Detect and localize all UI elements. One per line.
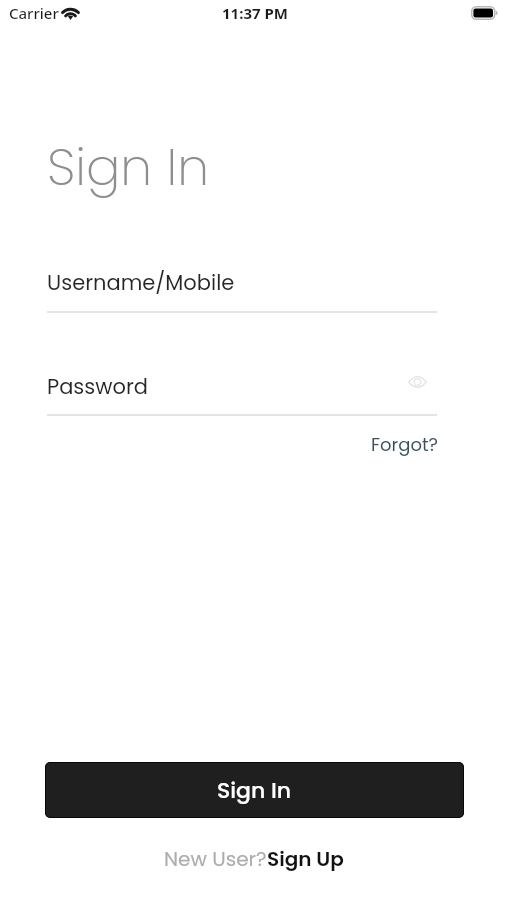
staticText: Sign Up [267,845,344,873]
staticText: Username/Mobile [47,268,235,297]
button[interactable]: Sign In [45,762,464,818]
button[interactable]: Username/Mobile [47,268,437,313]
button[interactable]: Sign Up [267,845,344,873]
button[interactable]: Password [47,372,148,401]
staticText: Carrier [9,3,59,23]
staticText: Sign In [47,131,209,202]
button[interactable]: Show password [402,367,432,397]
button[interactable]: Forgot? [371,432,438,457]
staticText: 11:37 PM [222,3,288,23]
staticText: Sign In [217,775,292,806]
staticText: New User? [164,845,267,873]
staticText: Forgot? [371,432,438,457]
